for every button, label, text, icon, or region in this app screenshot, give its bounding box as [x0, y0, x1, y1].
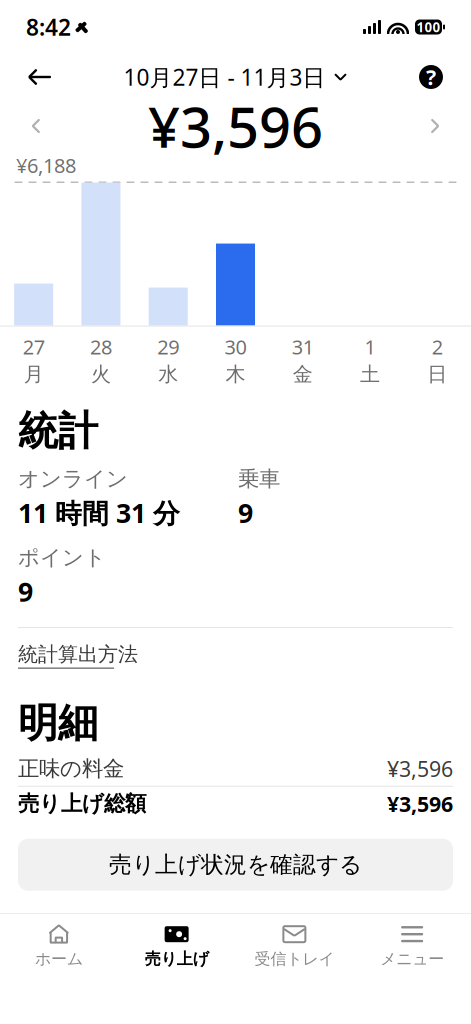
- staticText: 統計: [18, 407, 98, 456]
- button[interactable]: ホーム: [0, 920, 118, 972]
- staticText: ¥6,188: [16, 152, 76, 179]
- staticText: 28: [90, 334, 112, 360]
- staticText: 29: [157, 334, 179, 360]
- staticText: ¥3,596: [387, 790, 453, 818]
- staticText: 金: [293, 362, 313, 387]
- staticText: ¥3,596: [148, 89, 323, 163]
- staticText: 11 時間 31 分: [18, 495, 180, 530]
- staticText: 日: [427, 362, 447, 387]
- staticText: 30: [224, 334, 246, 360]
- button[interactable]: Help: [409, 55, 453, 99]
- staticText: ?: [426, 63, 436, 91]
- staticText: 10月27日 - 11月3日: [123, 62, 325, 92]
- staticText: 統計算出方法: [18, 642, 138, 667]
- button[interactable]: Back: [18, 55, 62, 99]
- staticText: 木: [225, 362, 245, 387]
- staticText: 売り上げ: [145, 949, 209, 969]
- staticText: オンライン: [18, 466, 128, 492]
- staticText: 9: [238, 495, 253, 530]
- staticText: 1: [365, 334, 376, 360]
- staticText: 土: [360, 362, 380, 387]
- staticText: 2: [432, 334, 443, 360]
- button[interactable]: 売り上げ: [118, 920, 236, 972]
- button[interactable]: 統計算出方法: [18, 628, 138, 673]
- staticText: メニュー: [380, 949, 444, 969]
- staticText: 8:42: [26, 12, 71, 42]
- staticText: 正味の料金: [18, 756, 124, 782]
- staticText: 月: [24, 362, 44, 387]
- staticText: 100: [416, 18, 440, 36]
- staticText: ¥3,596: [387, 755, 453, 783]
- staticText: 水: [158, 362, 178, 387]
- button[interactable]: 10月27日 - 11月3日: [117, 55, 353, 99]
- staticText: 乗車: [238, 466, 280, 492]
- staticText: ホーム: [35, 949, 83, 969]
- button[interactable]: 売り上げ状況を確認する: [18, 839, 453, 891]
- staticText: 受信トレイ: [254, 949, 334, 969]
- button[interactable]: Previous week: [14, 102, 58, 150]
- button[interactable]: 受信トレイ: [235, 920, 353, 972]
- staticText: 27: [23, 334, 45, 360]
- button[interactable]: Next week: [413, 102, 457, 150]
- staticText: ポイント: [18, 544, 106, 571]
- staticText: 売り上げ総額: [18, 791, 146, 817]
- staticText: 明細: [18, 699, 98, 748]
- staticText: 31: [292, 334, 314, 360]
- staticText: 9: [18, 574, 33, 609]
- staticText: 売り上げ状況を確認する: [109, 851, 362, 879]
- staticText: 火: [91, 362, 111, 387]
- button[interactable]: メニュー: [353, 920, 471, 972]
